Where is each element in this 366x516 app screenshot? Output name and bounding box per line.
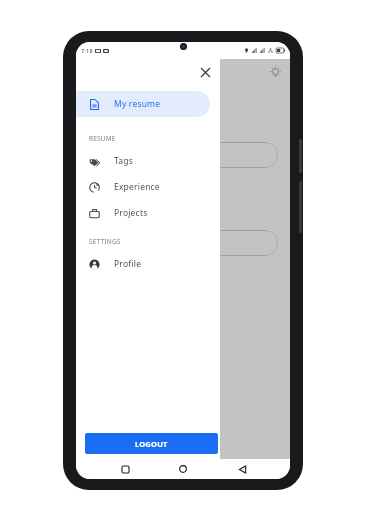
staticText: School name	[100, 150, 148, 160]
button[interactable]: My resume	[76, 91, 210, 117]
staticText: SETTINGS	[89, 237, 121, 246]
button[interactable]: Recents	[115, 459, 135, 479]
button[interactable]: Degree	[88, 230, 278, 256]
staticText: My resume	[114, 98, 161, 110]
staticText: 7:18	[81, 47, 93, 54]
staticText: Graduated	[102, 182, 142, 192]
staticText: Experience	[114, 181, 160, 193]
staticText: Degree	[100, 238, 127, 248]
button[interactable]: Home	[173, 459, 193, 479]
button[interactable]: Experience	[76, 174, 220, 200]
staticText: RESUME	[89, 134, 116, 143]
button[interactable]: Back	[232, 459, 252, 479]
staticText: Enrollment	[88, 107, 148, 122]
staticText: school	[102, 202, 127, 212]
button[interactable]: Projects	[76, 200, 220, 226]
button[interactable]: Close navigation drawer	[196, 63, 214, 81]
staticText: Profile	[114, 258, 142, 270]
staticText: LOGOUT	[135, 439, 168, 449]
button[interactable]: LOGOUT	[85, 433, 218, 454]
staticText: Tags	[114, 155, 133, 167]
staticText: Projects	[114, 207, 148, 219]
button[interactable]: School name	[88, 142, 278, 168]
button[interactable]: Profile	[76, 251, 220, 277]
button[interactable]: Tips	[266, 63, 284, 81]
button[interactable]: Tags	[76, 148, 220, 174]
